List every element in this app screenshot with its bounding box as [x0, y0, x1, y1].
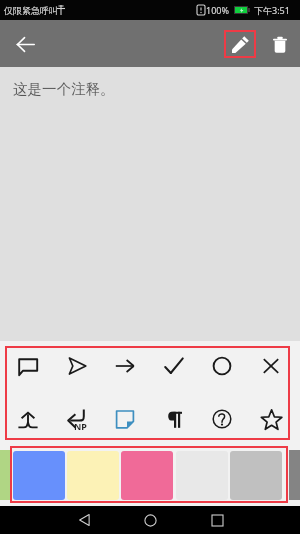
- button[interactable]: Star: [249, 397, 293, 441]
- button[interactable]: Delete: [264, 28, 296, 60]
- button[interactable]: New paragraph: [55, 397, 99, 441]
- button[interactable]: [13, 451, 65, 500]
- button[interactable]: [121, 451, 173, 500]
- staticText: 下午3:51: [254, 4, 290, 16]
- button[interactable]: Send: [55, 344, 99, 388]
- button[interactable]: Back: [8, 27, 42, 61]
- button[interactable]: Insert: [6, 397, 50, 441]
- button[interactable]: Close: [249, 344, 293, 388]
- button[interactable]: Pilcrow: [152, 397, 196, 441]
- button[interactable]: Home: [134, 506, 166, 534]
- staticText: 这是一个注释。: [13, 80, 115, 98]
- button[interactable]: Help: [200, 397, 244, 441]
- staticText: 100%: [206, 4, 229, 16]
- button[interactable]: Back: [68, 506, 100, 534]
- button[interactable]: Check: [152, 344, 196, 388]
- button[interactable]: Note: [103, 397, 147, 441]
- button[interactable]: Recents: [201, 506, 233, 534]
- button[interactable]: Comment: [6, 344, 50, 388]
- staticText: NP: [74, 420, 87, 432]
- button[interactable]: Arrow: [103, 344, 147, 388]
- button[interactable]: Edit: [224, 30, 256, 58]
- button[interactable]: Circle: [200, 344, 244, 388]
- staticText: 仅限紧急呼叫: [4, 4, 61, 16]
